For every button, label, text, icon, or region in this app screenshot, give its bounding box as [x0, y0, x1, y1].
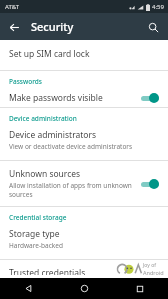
- button[interactable]: Home: [56, 278, 112, 299]
- staticText: Device administrators: [9, 129, 97, 141]
- staticText: Allow installation of apps from unknown …: [9, 181, 132, 199]
- staticText: Credential storage: [9, 213, 67, 222]
- button[interactable]: Unknown sources: [0, 165, 168, 202]
- staticText: 4:59: [152, 3, 164, 11]
- button[interactable]: Make passwords visible: [0, 89, 168, 107]
- button[interactable]: Device administrators: [0, 126, 168, 154]
- staticText: Security: [31, 19, 74, 34]
- staticText: Set up SIM card lock: [9, 48, 90, 60]
- button[interactable]: Search: [143, 17, 163, 37]
- button[interactable]: Recents: [112, 278, 168, 299]
- staticText: Android: [143, 269, 164, 276]
- button[interactable]: Storage type: [0, 225, 168, 253]
- button[interactable]: Back: [4, 17, 24, 37]
- staticText: Device administration: [9, 114, 77, 123]
- staticText: Unknown sources: [9, 168, 81, 180]
- button[interactable]: Back: [0, 278, 56, 299]
- staticText: Hardware-backed: [9, 241, 63, 250]
- staticText: View or deactivate device administrators: [9, 142, 133, 151]
- staticText: Make passwords visible: [9, 92, 103, 104]
- staticText: Storage type: [9, 228, 60, 240]
- staticText: Passwords: [9, 77, 43, 86]
- staticText: AT&T: [5, 3, 19, 11]
- button[interactable]: Set up SIM card lock: [0, 45, 168, 63]
- staticText: Joy of: [143, 262, 156, 269]
- button[interactable]: Trusted credentials: [0, 264, 168, 278]
- staticText: Trusted credentials: [9, 267, 86, 275]
